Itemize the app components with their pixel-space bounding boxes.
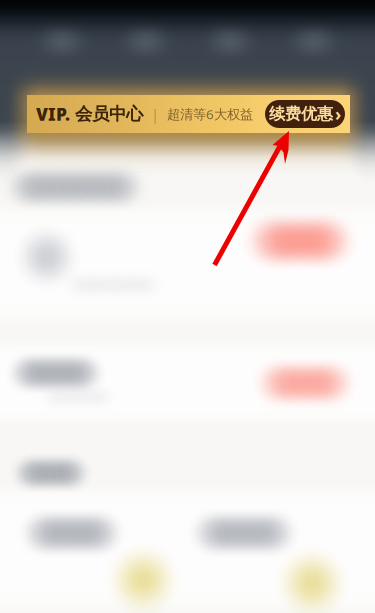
staticText: 续费优惠 — [269, 104, 333, 124]
staticText: 超清等6大权益 — [167, 105, 253, 123]
staticText: 会员中心 — [70, 103, 143, 125]
button[interactable]: VIP. — [27, 95, 350, 133]
staticText: VIP. — [36, 102, 70, 125]
staticText: › — [335, 102, 341, 125]
staticText: | — [143, 104, 167, 124]
